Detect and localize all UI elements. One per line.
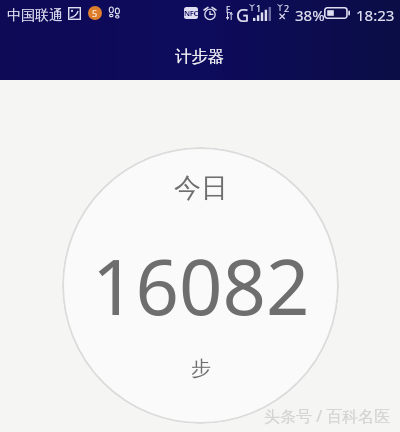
staticText: E: [226, 4, 231, 15]
staticText: 步: [191, 356, 211, 381]
staticText: 中国联通: [7, 7, 63, 25]
staticText: 5: [92, 7, 98, 19]
staticText: 头条号 / 百科名医: [264, 405, 391, 427]
staticText: 计步器: [175, 46, 225, 67]
button[interactable]: 今日步数 16082 步: [62, 147, 339, 424]
staticText: ✕: [278, 11, 287, 23]
staticText: 1: [256, 2, 262, 14]
staticText: 18:23: [356, 5, 395, 25]
staticText: 今日: [174, 171, 228, 205]
staticText: 16082: [92, 234, 310, 338]
staticText: 38%: [295, 5, 325, 25]
staticText: NFC: [184, 8, 198, 18]
staticText: G: [236, 3, 250, 28]
staticText: 2: [284, 2, 290, 14]
